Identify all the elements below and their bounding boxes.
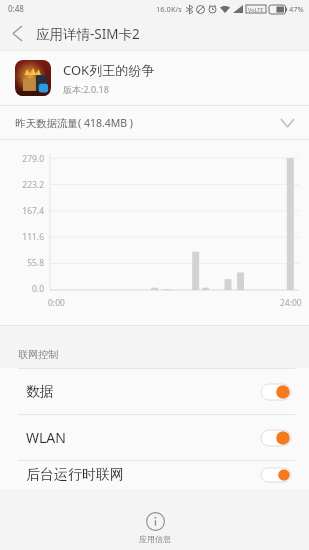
button[interactable]: 昨天数据流量( 418.4MB ) — [0, 106, 309, 139]
staticText: 联网控制 — [18, 348, 58, 361]
button[interactable]: 后台运行时联网 — [0, 461, 309, 489]
staticText: 0:48 — [8, 3, 24, 14]
staticText: 279.0 — [6, 153, 44, 165]
staticText: 0:00 — [48, 297, 65, 309]
button[interactable]: 数据 — [0, 369, 309, 414]
button[interactable]: 返回 — [0, 17, 34, 50]
staticText: 0.0 — [6, 283, 44, 295]
staticText: 后台运行时联网 — [26, 466, 124, 484]
staticText: 55.8 — [6, 257, 44, 269]
staticText: WLAN — [26, 428, 66, 447]
button[interactable]: 开关 — [261, 468, 291, 482]
staticText: 16.0K/s — [156, 4, 182, 14]
button[interactable]: 开关 — [261, 384, 291, 400]
staticText: 47% — [289, 4, 304, 14]
staticText: 版本:2.0.18 — [63, 83, 109, 95]
staticText: 应用详情-SIM卡2 — [36, 25, 140, 43]
button[interactable]: COK列王的纷争 — [0, 51, 309, 105]
staticText: 223.2 — [6, 179, 44, 191]
staticText: 111.6 — [6, 231, 44, 243]
staticText: 24:00 — [280, 297, 302, 309]
staticText: VoLTE — [248, 6, 264, 13]
staticText: 数据 — [26, 383, 54, 401]
staticText: 昨天数据流量( 418.4MB ) — [15, 116, 133, 130]
staticText: COK列王的纷争 — [63, 61, 155, 79]
staticText: 应用信息 — [139, 534, 171, 544]
button[interactable]: WLAN — [0, 415, 309, 460]
button[interactable]: 开关 — [261, 430, 291, 446]
staticText: 167.4 — [6, 205, 44, 217]
button[interactable]: 应用信息 — [125, 509, 185, 547]
